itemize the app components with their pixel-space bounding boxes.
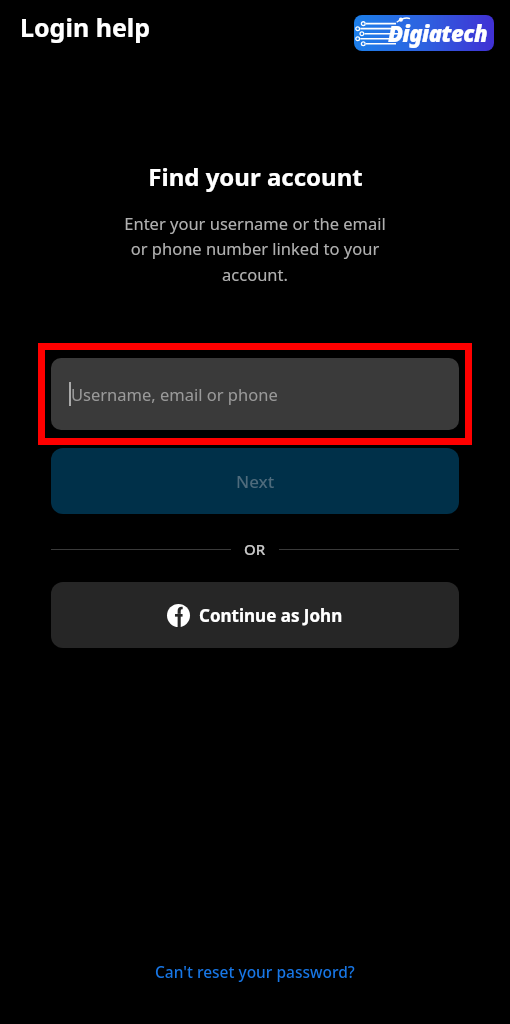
staticText: Can't reset your password? (155, 961, 355, 982)
button[interactable]: Can't reset your password? (139, 953, 371, 990)
staticText: OR (244, 539, 266, 559)
staticText: Find your account (148, 160, 363, 193)
staticText: Digiatech (388, 18, 488, 48)
staticText: Username, email or phone (71, 383, 278, 405)
staticText: Enter your username or the email or phon… (40, 212, 470, 286)
staticText: Continue as John (199, 604, 343, 627)
button[interactable]: Next (51, 448, 459, 514)
other: Digiatech logo (354, 15, 494, 51)
staticText: Next (236, 470, 275, 493)
button[interactable]: Continue as John (51, 582, 459, 648)
button[interactable]: Username, email or phone (51, 358, 459, 430)
staticText: Login help (20, 10, 151, 44)
